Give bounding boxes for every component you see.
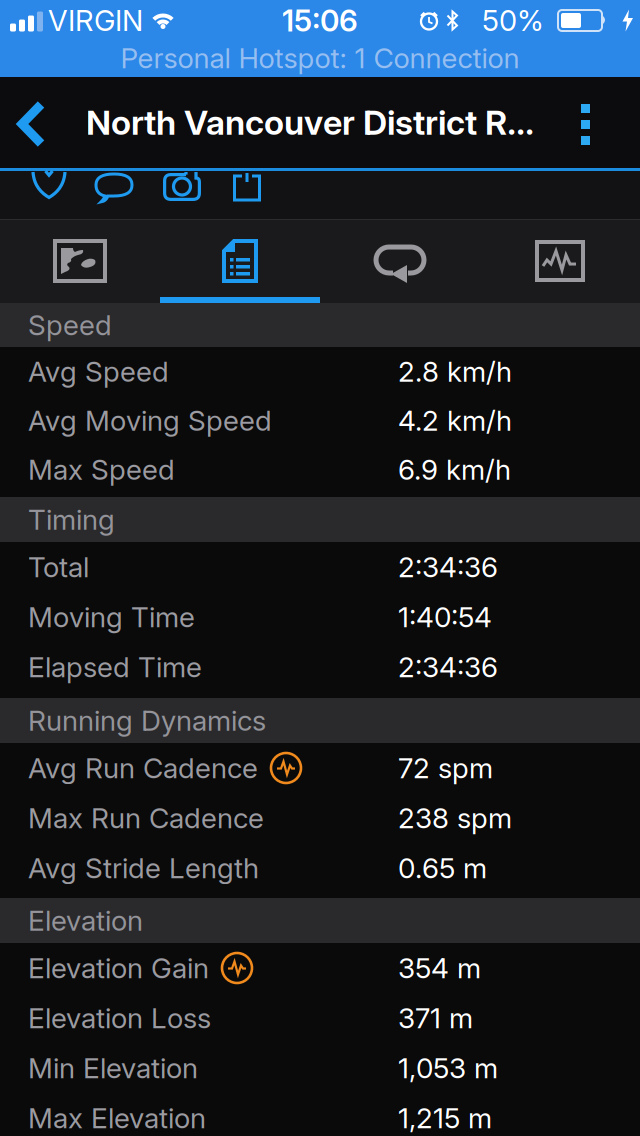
staticText: 1:40:54 xyxy=(398,600,492,634)
staticText: Avg Moving Speed xyxy=(28,404,272,437)
button[interactable]: Charts xyxy=(480,222,640,300)
staticText: 2.8 km/h xyxy=(398,355,512,388)
staticText: Min Elevation xyxy=(28,1051,198,1085)
staticText: 354 m xyxy=(398,951,481,985)
staticText: VIRGIN xyxy=(48,3,143,38)
staticText: 6.9 km/h xyxy=(398,453,511,486)
button[interactable]: Map xyxy=(0,222,160,300)
staticText: North Vancouver District R... xyxy=(86,102,534,143)
staticText: 1,215 m xyxy=(398,1101,492,1135)
staticText: Avg Speed xyxy=(28,355,169,388)
staticText: 371 m xyxy=(398,1001,473,1035)
button[interactable]: More xyxy=(581,102,640,143)
staticText: Elevation Loss xyxy=(28,1001,211,1035)
staticText: Timing xyxy=(28,503,115,536)
button[interactable]: Personal Hotspot: 1 Connection xyxy=(0,41,640,77)
staticText: Moving Time xyxy=(28,600,195,634)
staticText: Running Dynamics xyxy=(28,704,266,737)
staticText: Elevation xyxy=(28,904,143,937)
staticText: Max Run Cadence xyxy=(28,801,264,835)
staticText: 0.65 m xyxy=(398,851,487,885)
staticText: Avg Run Cadence xyxy=(28,751,258,785)
button[interactable]: Share xyxy=(217,173,277,217)
staticText: Speed xyxy=(28,308,112,342)
button[interactable]: Laps xyxy=(320,222,480,300)
staticText: 2:34:36 xyxy=(398,550,498,584)
button[interactable]: Comment xyxy=(81,173,147,217)
staticText: 50% xyxy=(482,3,544,38)
staticText: Max Elevation xyxy=(28,1101,206,1135)
staticText: 15:06 xyxy=(282,2,358,39)
staticText: Elevation Gain xyxy=(28,951,209,985)
staticText: Avg Stride Length xyxy=(28,851,259,885)
button[interactable]: Like xyxy=(17,173,81,217)
staticText: Max Speed xyxy=(28,453,175,486)
button[interactable]: Back xyxy=(0,100,46,144)
staticText: Personal Hotspot: 1 Connection xyxy=(120,41,519,75)
staticText: 1,053 m xyxy=(398,1051,498,1085)
staticText: Total xyxy=(28,550,89,584)
staticText: 72 spm xyxy=(398,751,493,785)
button[interactable]: Stats xyxy=(160,222,320,300)
staticText: 238 spm xyxy=(398,801,512,835)
staticText: 4.2 km/h xyxy=(398,404,512,437)
staticText: Elapsed Time xyxy=(28,650,202,684)
staticText: 2:34:36 xyxy=(398,650,498,684)
button[interactable]: Add Photo xyxy=(147,173,217,217)
